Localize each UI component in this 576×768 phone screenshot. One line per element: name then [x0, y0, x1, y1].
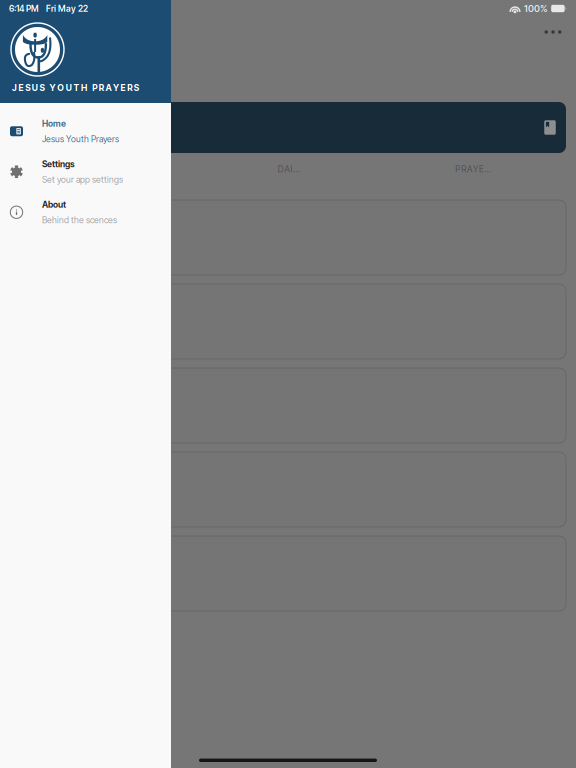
staticText: Behind the scences: [42, 215, 117, 225]
staticText: DAILY: [278, 164, 303, 174]
staticText: Set your app settings: [42, 174, 123, 185]
button[interactable]: Home: [0, 111, 171, 151]
button[interactable]: Morning Prayer: [10, 368, 566, 443]
button[interactable]: Daily Reflection: [10, 200, 566, 275]
button[interactable]: Settings: [0, 151, 171, 192]
staticText: Settings: [42, 159, 75, 169]
button[interactable]: The Liturgy: [10, 452, 566, 527]
staticText: Home: [42, 118, 66, 129]
button[interactable]: TODAY: [13, 153, 198, 185]
button[interactable]: Examination of Conscience: [10, 536, 566, 611]
staticText: JESUS YOUTH PRAYERS: [12, 82, 139, 93]
staticText: PRAYERS: [455, 164, 496, 174]
staticText: 100%: [524, 3, 548, 14]
button[interactable]: Word of God: [10, 284, 566, 359]
button[interactable]: About: [0, 192, 171, 232]
button[interactable]: Bookmarks: [534, 107, 566, 147]
staticText: About: [42, 199, 66, 210]
button[interactable]: More options: [532, 17, 574, 47]
staticText: Fri May 22: [46, 3, 88, 14]
staticText: Jesus Youth Prayers: [42, 134, 119, 144]
staticText: 6:14 PM: [9, 3, 39, 14]
